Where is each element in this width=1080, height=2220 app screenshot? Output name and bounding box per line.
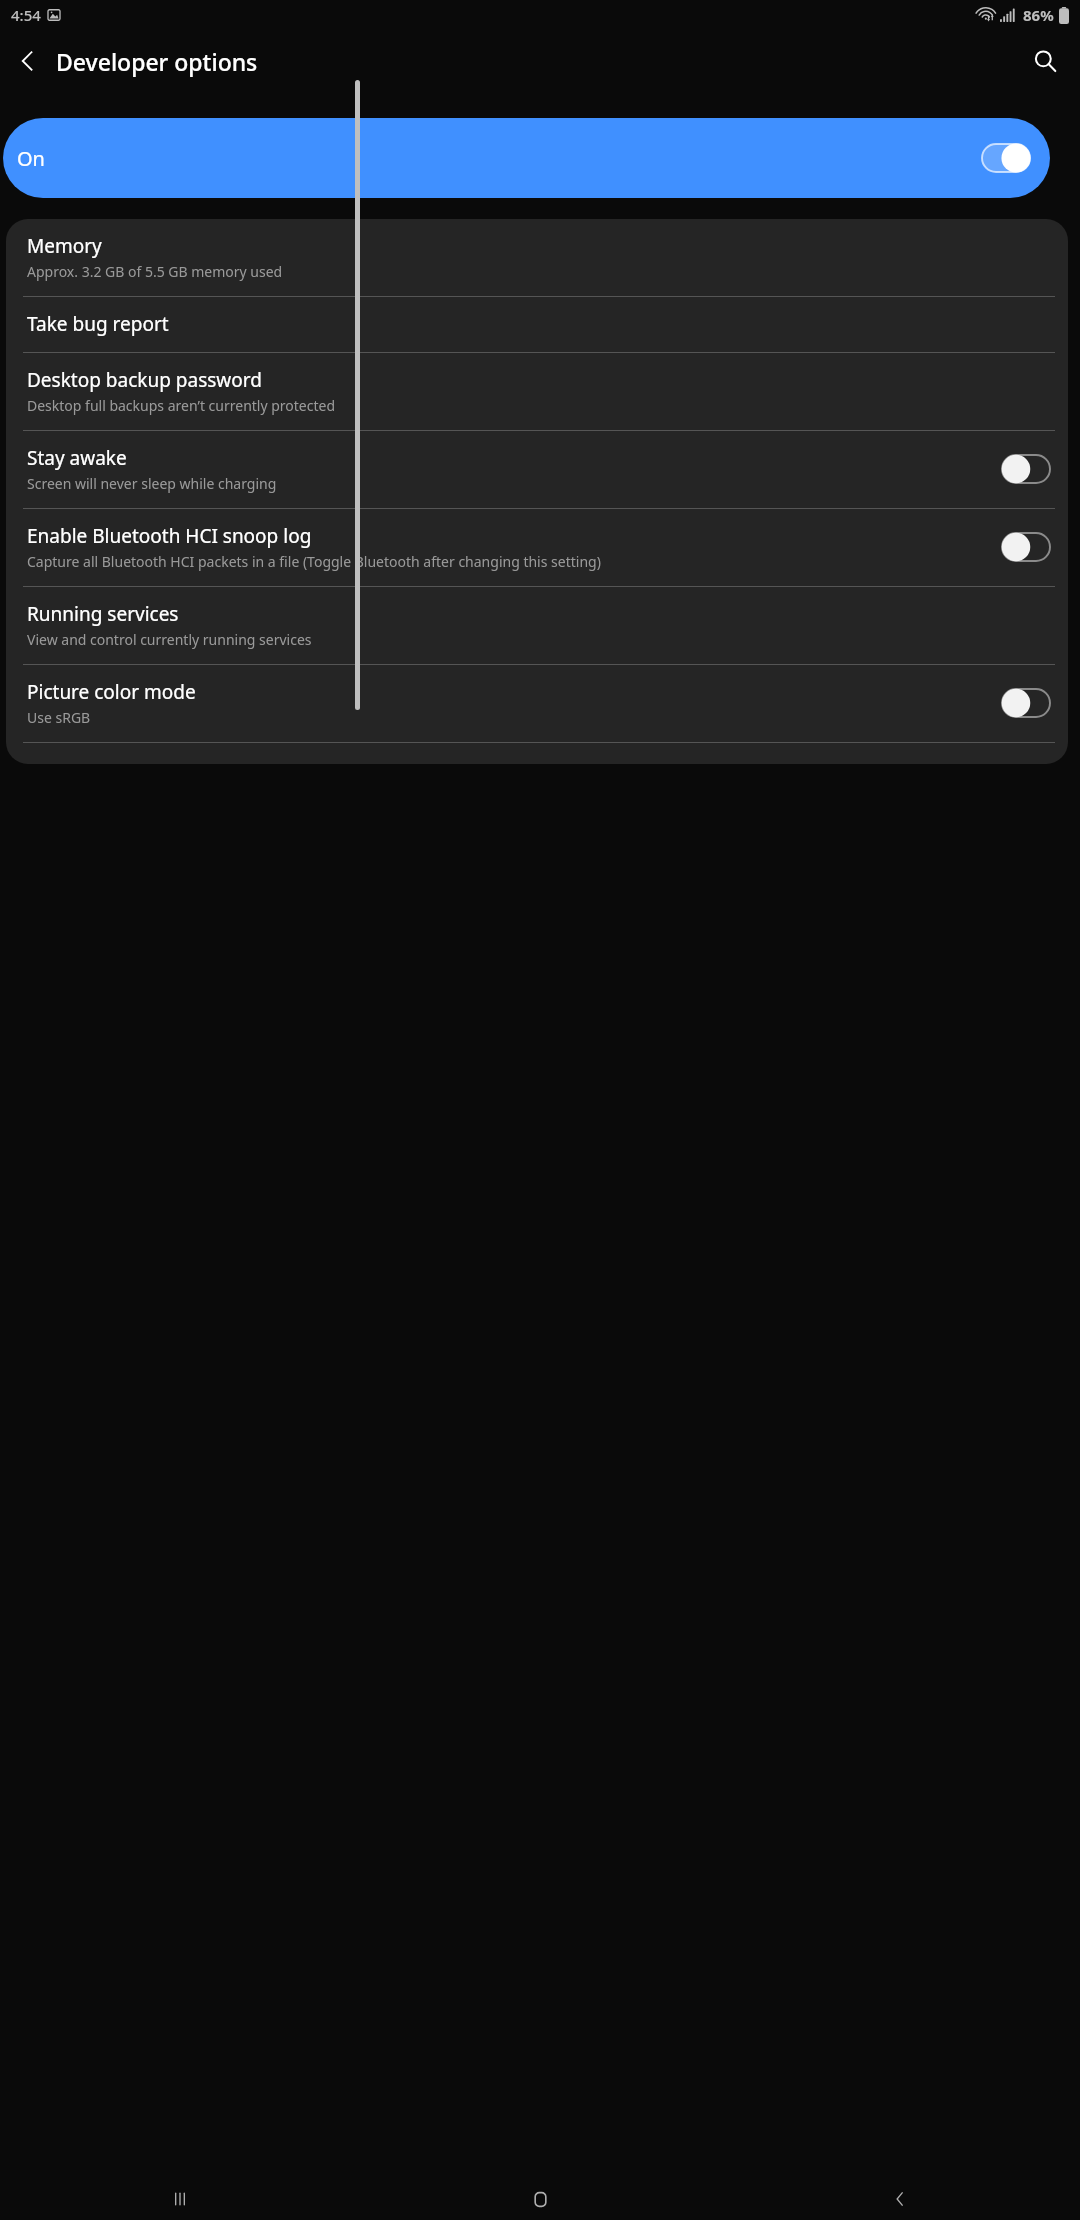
button[interactable]: Desktop backup password — [6, 353, 1068, 430]
staticText: Desktop backup password — [27, 367, 262, 393]
button[interactable]: Recents — [0, 2178, 360, 2220]
staticText: Picture color mode — [27, 679, 196, 705]
button[interactable]: Enable Bluetooth HCI snoop log — [6, 509, 1068, 586]
staticText: 86% — [1023, 5, 1054, 25]
staticText: Use sRGB — [27, 708, 91, 727]
staticText: 4:54 — [11, 5, 41, 25]
button[interactable]: Back — [0, 33, 56, 89]
button[interactable]: Stay awake toggle — [1002, 455, 1050, 483]
button[interactable]: Stay awake — [6, 431, 1068, 508]
staticText: Capture all Bluetooth HCI packets in a f… — [27, 552, 601, 571]
button[interactable]: Memory — [6, 219, 1068, 296]
button[interactable]: Search — [1017, 33, 1073, 89]
staticText: Stay awake — [27, 445, 127, 471]
staticText: View and control currently running servi… — [27, 630, 312, 649]
staticText: On — [17, 145, 45, 172]
button[interactable]: On — [3, 118, 1050, 198]
button[interactable]: Picture color mode — [6, 665, 1068, 742]
staticText: Screen will never sleep while charging — [27, 474, 277, 493]
button[interactable]: Running services — [6, 587, 1068, 664]
staticText: Desktop full backups aren’t currently pr… — [27, 396, 336, 415]
button[interactable]: Take bug report — [6, 297, 1068, 352]
button[interactable]: Enable Bluetooth HCI snoop log toggle — [1002, 533, 1050, 561]
staticText: Approx. 3.2 GB of 5.5 GB memory used — [27, 262, 283, 281]
button[interactable]: Home — [360, 2178, 720, 2220]
staticText: Developer options — [56, 46, 258, 77]
staticText: Enable Bluetooth HCI snoop log — [27, 523, 312, 549]
staticText: Running services — [27, 601, 179, 627]
staticText: Take bug report — [27, 311, 169, 337]
staticText: Memory — [27, 233, 102, 259]
button[interactable]: Picture color mode toggle — [1002, 689, 1050, 717]
button[interactable]: Back — [720, 2178, 1080, 2220]
